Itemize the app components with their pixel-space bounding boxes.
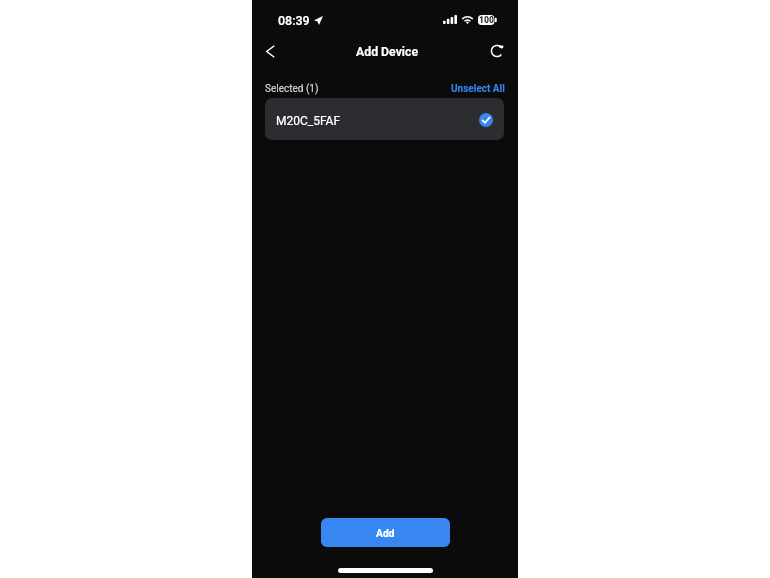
staticText: Unselect All (451, 83, 505, 95)
button[interactable]: Unselect All (451, 83, 505, 95)
staticText: 08:39 (278, 13, 310, 28)
button[interactable]: Add (321, 518, 450, 547)
staticText: Add Device (356, 45, 419, 59)
button[interactable]: M20C_5FAF (265, 98, 504, 140)
staticText: Add (376, 527, 395, 539)
staticText: 100 (479, 15, 494, 25)
staticText: M20C_5FAF (276, 114, 341, 128)
button[interactable]: Refresh (483, 37, 511, 65)
staticText: Selected (1) (265, 83, 319, 95)
button[interactable]: Selected (1) (265, 83, 319, 95)
button[interactable]: Back (256, 37, 284, 65)
